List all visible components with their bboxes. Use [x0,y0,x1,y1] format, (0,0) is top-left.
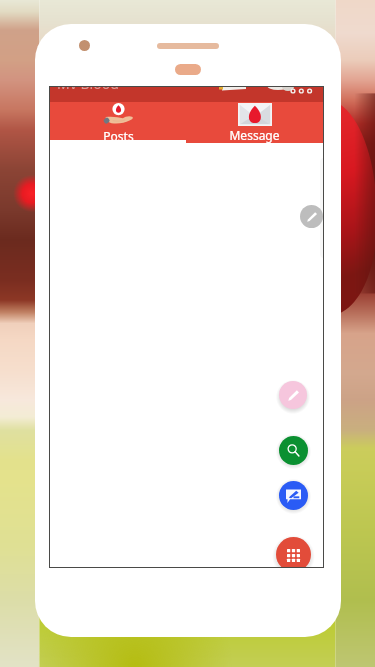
staticText: Posts [103,128,134,144]
button[interactable]: Apps [276,537,311,567]
button[interactable]: Posts [50,102,186,143]
button[interactable]: Search [279,436,308,465]
button[interactable]: Compose message [279,481,308,510]
staticText: My Blood [57,87,119,89]
button[interactable]: Draw [279,381,307,409]
button[interactable]: Edit [300,205,323,228]
staticText: Message [229,127,280,143]
button[interactable]: Message [186,102,323,143]
